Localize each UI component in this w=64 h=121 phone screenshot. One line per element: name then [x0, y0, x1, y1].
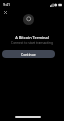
staticText: Continue	[21, 52, 36, 57]
staticText: 9:41	[3, 2, 11, 7]
button[interactable]: Close	[1, 8, 10, 17]
button[interactable]: Continue	[2, 50, 55, 58]
staticText: Connect to start transacting	[0, 41, 64, 45]
staticText: A Bitcoin Terminal	[0, 35, 64, 40]
